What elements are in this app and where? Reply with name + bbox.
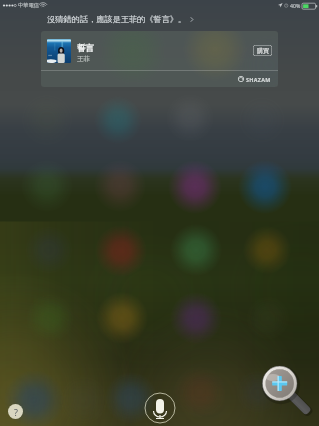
staticText: 誓言 — [77, 43, 94, 54]
button[interactable]: Siri microphone — [143, 391, 177, 425]
button[interactable]: Help — [8, 404, 23, 419]
staticText: 購買 — [257, 47, 269, 55]
staticText: SHAZAM — [246, 76, 271, 83]
staticText: 40% — [290, 2, 301, 9]
staticText: ? — [14, 406, 18, 418]
staticText: 沒猜錯的話，應該是王菲的《誓言》。 — [47, 14, 187, 24]
staticText: 中華電信 — [18, 2, 39, 9]
button[interactable]: 誓言 — [41, 31, 278, 87]
staticText: 王菲 — [77, 55, 91, 63]
button[interactable]: Zoom — [256, 360, 319, 423]
button[interactable]: 購買 — [253, 45, 272, 56]
